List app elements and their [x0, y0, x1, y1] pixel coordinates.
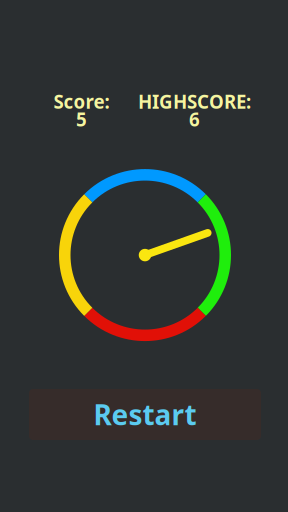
- staticText: Restart: [93, 396, 196, 433]
- staticText: Score:: [53, 89, 109, 114]
- staticText: 6: [189, 107, 200, 132]
- button[interactable]: Restart: [29, 389, 261, 440]
- staticText: 5: [76, 107, 87, 132]
- staticText: HIGHSCORE:: [138, 89, 251, 114]
